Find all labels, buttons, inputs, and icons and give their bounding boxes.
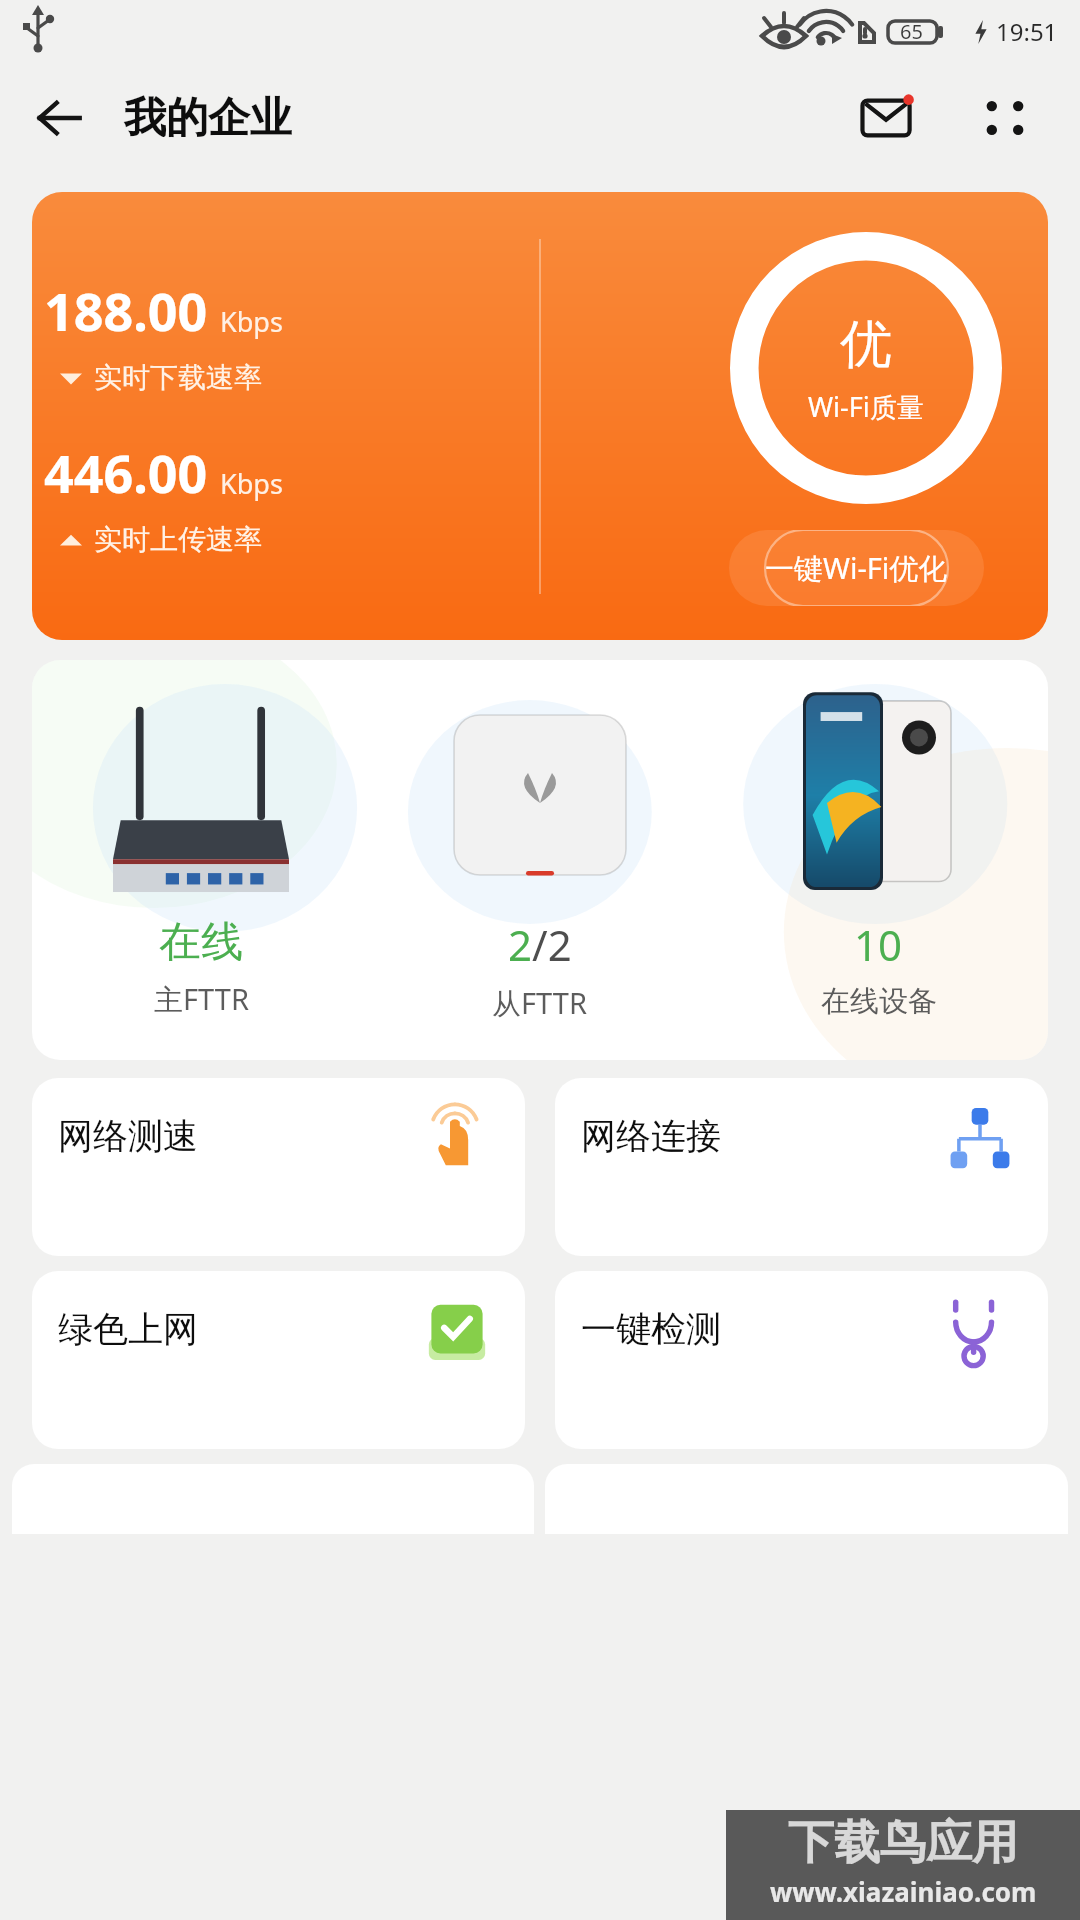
staticText: 2/2 bbox=[508, 916, 572, 973]
button[interactable]: 网络测速 bbox=[32, 1078, 525, 1256]
button[interactable]: 在线 bbox=[32, 660, 1048, 1060]
staticText: 网络连接 bbox=[581, 1114, 721, 1158]
staticText: Kbps bbox=[220, 465, 283, 502]
staticText: 一键检测 bbox=[581, 1307, 721, 1351]
staticText: 19:51 bbox=[996, 15, 1058, 48]
button[interactable]: 一键Wi-Fi优化 bbox=[729, 530, 984, 606]
staticText: 网络测速 bbox=[58, 1114, 198, 1158]
staticText: 从FTTR bbox=[492, 983, 587, 1023]
staticText: 一键Wi-Fi优化 bbox=[765, 548, 948, 588]
staticText: 实时下载速率 bbox=[94, 360, 262, 395]
button[interactable]: Messages bbox=[854, 81, 928, 155]
staticText: 我的企业 bbox=[124, 92, 292, 145]
staticText: 优 bbox=[840, 312, 892, 378]
staticText: 65 bbox=[900, 18, 923, 45]
staticText: Wi-Fi质量 bbox=[808, 388, 924, 425]
staticText: 下载鸟应用 bbox=[788, 1814, 1018, 1872]
button[interactable]: More options bbox=[972, 85, 1038, 151]
staticText: 绿色上网 bbox=[58, 1307, 198, 1351]
button[interactable]: 一键检测 bbox=[555, 1271, 1048, 1449]
button[interactable]: 10 bbox=[709, 660, 1048, 1060]
button[interactable]: 2/2 bbox=[370, 660, 709, 1060]
staticText: www.xiazainiao.com bbox=[770, 1874, 1037, 1909]
staticText: 188.00 bbox=[44, 275, 208, 346]
staticText: Kbps bbox=[220, 303, 283, 340]
button[interactable]: Back bbox=[28, 87, 90, 149]
staticText: 10 bbox=[854, 916, 903, 973]
staticText: 在线 bbox=[159, 916, 243, 969]
button[interactable]: 188.00 bbox=[32, 192, 1048, 640]
staticText: 实时上传速率 bbox=[94, 522, 262, 557]
button[interactable]: 在线 bbox=[32, 660, 370, 1060]
staticText: 主FTTR bbox=[154, 979, 249, 1019]
staticText: 446.00 bbox=[44, 437, 208, 508]
button[interactable]: 网络连接 bbox=[555, 1078, 1048, 1256]
button[interactable]: 绿色上网 bbox=[32, 1271, 525, 1449]
staticText: 在线设备 bbox=[821, 983, 937, 1020]
